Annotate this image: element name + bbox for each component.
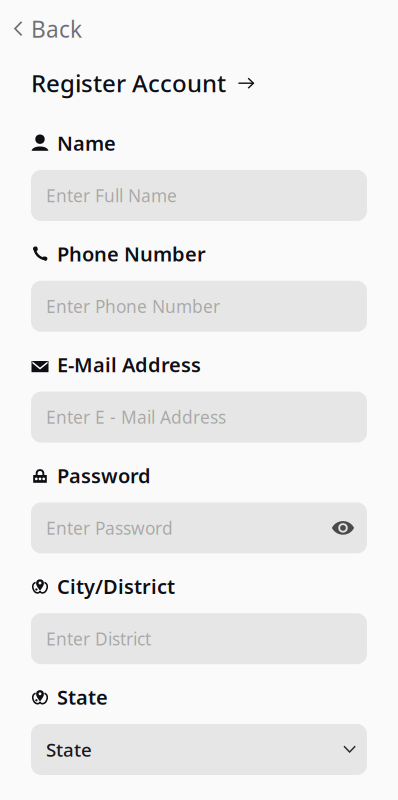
staticText: E-Mail Address <box>57 351 201 378</box>
button[interactable]: Back <box>14 14 104 44</box>
staticText: Phone Number <box>57 240 206 267</box>
button[interactable]: State <box>31 724 367 775</box>
button[interactable]: Enter Password <box>31 502 367 553</box>
staticText: Enter Phone Number <box>46 295 220 318</box>
button[interactable]: Enter Full Name <box>31 170 367 221</box>
staticText: Enter District <box>46 627 151 650</box>
staticText: Register Account <box>31 67 226 99</box>
staticText: State <box>46 737 92 762</box>
staticText: Enter E - Mail Address <box>46 406 226 429</box>
staticText: Name <box>57 130 116 156</box>
staticText: Enter Full Name <box>46 184 177 207</box>
button[interactable]: Enter Phone Number <box>31 281 367 332</box>
button[interactable]: Enter District <box>31 613 367 664</box>
button[interactable]: Show password <box>328 513 358 543</box>
staticText: State <box>57 684 108 710</box>
staticText: Enter Password <box>46 516 173 539</box>
staticText: City/District <box>57 573 175 599</box>
staticText: Password <box>57 462 151 489</box>
staticText: Back <box>31 14 82 44</box>
button[interactable]: Enter E - Mail Address <box>31 392 367 443</box>
